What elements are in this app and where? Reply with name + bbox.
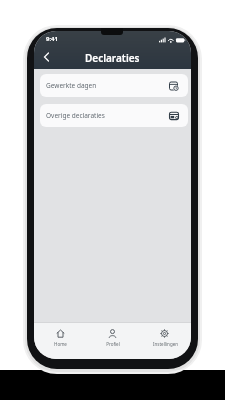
button[interactable]: Overige declaraties	[40, 104, 188, 127]
staticText: Gewerkte dagen	[46, 81, 97, 90]
staticText: Home	[54, 341, 67, 347]
staticText: Instellingen	[153, 341, 178, 347]
button[interactable]	[38, 49, 54, 65]
button[interactable]: Instellingen	[139, 329, 191, 359]
staticText: 9:41	[46, 35, 58, 43]
button[interactable]: Home	[34, 329, 87, 359]
button[interactable]: Profiel	[87, 329, 139, 359]
staticText: Declaraties	[85, 51, 140, 65]
button[interactable]: Gewerkte dagen	[40, 74, 188, 97]
staticText: Overige declaraties	[46, 111, 105, 120]
staticText: Profiel	[106, 341, 120, 347]
